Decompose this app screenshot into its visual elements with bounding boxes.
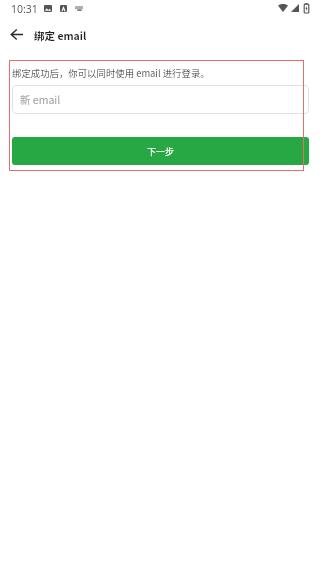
staticText: 下一步 <box>147 145 175 158</box>
staticText: 新 email <box>20 92 61 107</box>
button[interactable]: Back <box>5 25 29 43</box>
button[interactable]: 下一步 <box>12 137 309 165</box>
staticText: 10:31 <box>11 2 38 16</box>
staticText: 绑定成功后，你可以同时使用 email 进行登录。 <box>12 66 210 80</box>
button[interactable]: New email input field <box>12 85 309 114</box>
staticText: 绑定 email <box>34 28 87 43</box>
